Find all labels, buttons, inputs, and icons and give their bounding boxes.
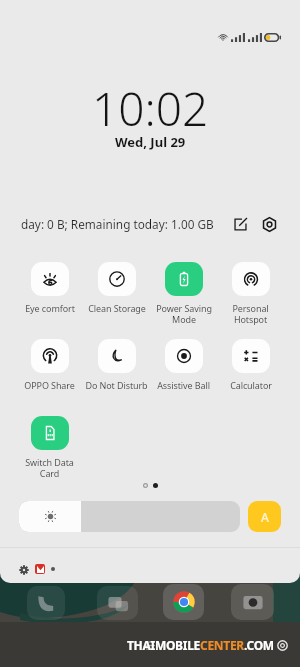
button[interactable]: Menu (135, 630, 165, 660)
button[interactable] (19, 501, 240, 532)
staticText: Clean Storage (88, 302, 146, 314)
button[interactable]: Power Saving Mode (150, 262, 217, 325)
staticText: Wed, Jul 29 (115, 133, 186, 151)
button[interactable]: Calculator (217, 339, 284, 391)
button[interactable]: Assistive Ball (150, 339, 217, 391)
staticText: THAIMOBILE (127, 637, 200, 653)
button[interactable]: Clean Storage (83, 262, 150, 314)
button[interactable]: Switch Data Card (16, 416, 83, 479)
staticText: .COM (244, 637, 274, 653)
staticText: Eye comfort (25, 302, 75, 314)
staticText: Assistive Ball (157, 379, 210, 391)
staticText: 10:02 (92, 77, 209, 140)
staticText: Switch Data Card (25, 456, 74, 479)
button[interactable]: Do Not Disturb (83, 339, 150, 391)
button[interactable]: OPPO Share (16, 339, 83, 391)
staticText: day: 0 B; Remaining today: 1.00 GB (21, 216, 214, 232)
button[interactable]: Settings (257, 213, 281, 235)
staticText: Calculator (230, 379, 272, 391)
button[interactable]: Personal Hotspot (217, 262, 284, 325)
button[interactable]: Eye comfort (16, 262, 83, 314)
button[interactable]: Auto brightness (248, 501, 281, 532)
staticText: Power Saving Mode (156, 302, 212, 325)
staticText: CENTER (200, 637, 244, 653)
button[interactable]: Notification settings (17, 563, 30, 576)
staticText: Do Not Disturb (85, 379, 148, 391)
staticText: OPPO Share (24, 379, 75, 391)
button[interactable]: Edit tiles (228, 213, 252, 235)
staticText: Personal Hotspot (232, 302, 269, 325)
staticText: A (261, 509, 269, 525)
